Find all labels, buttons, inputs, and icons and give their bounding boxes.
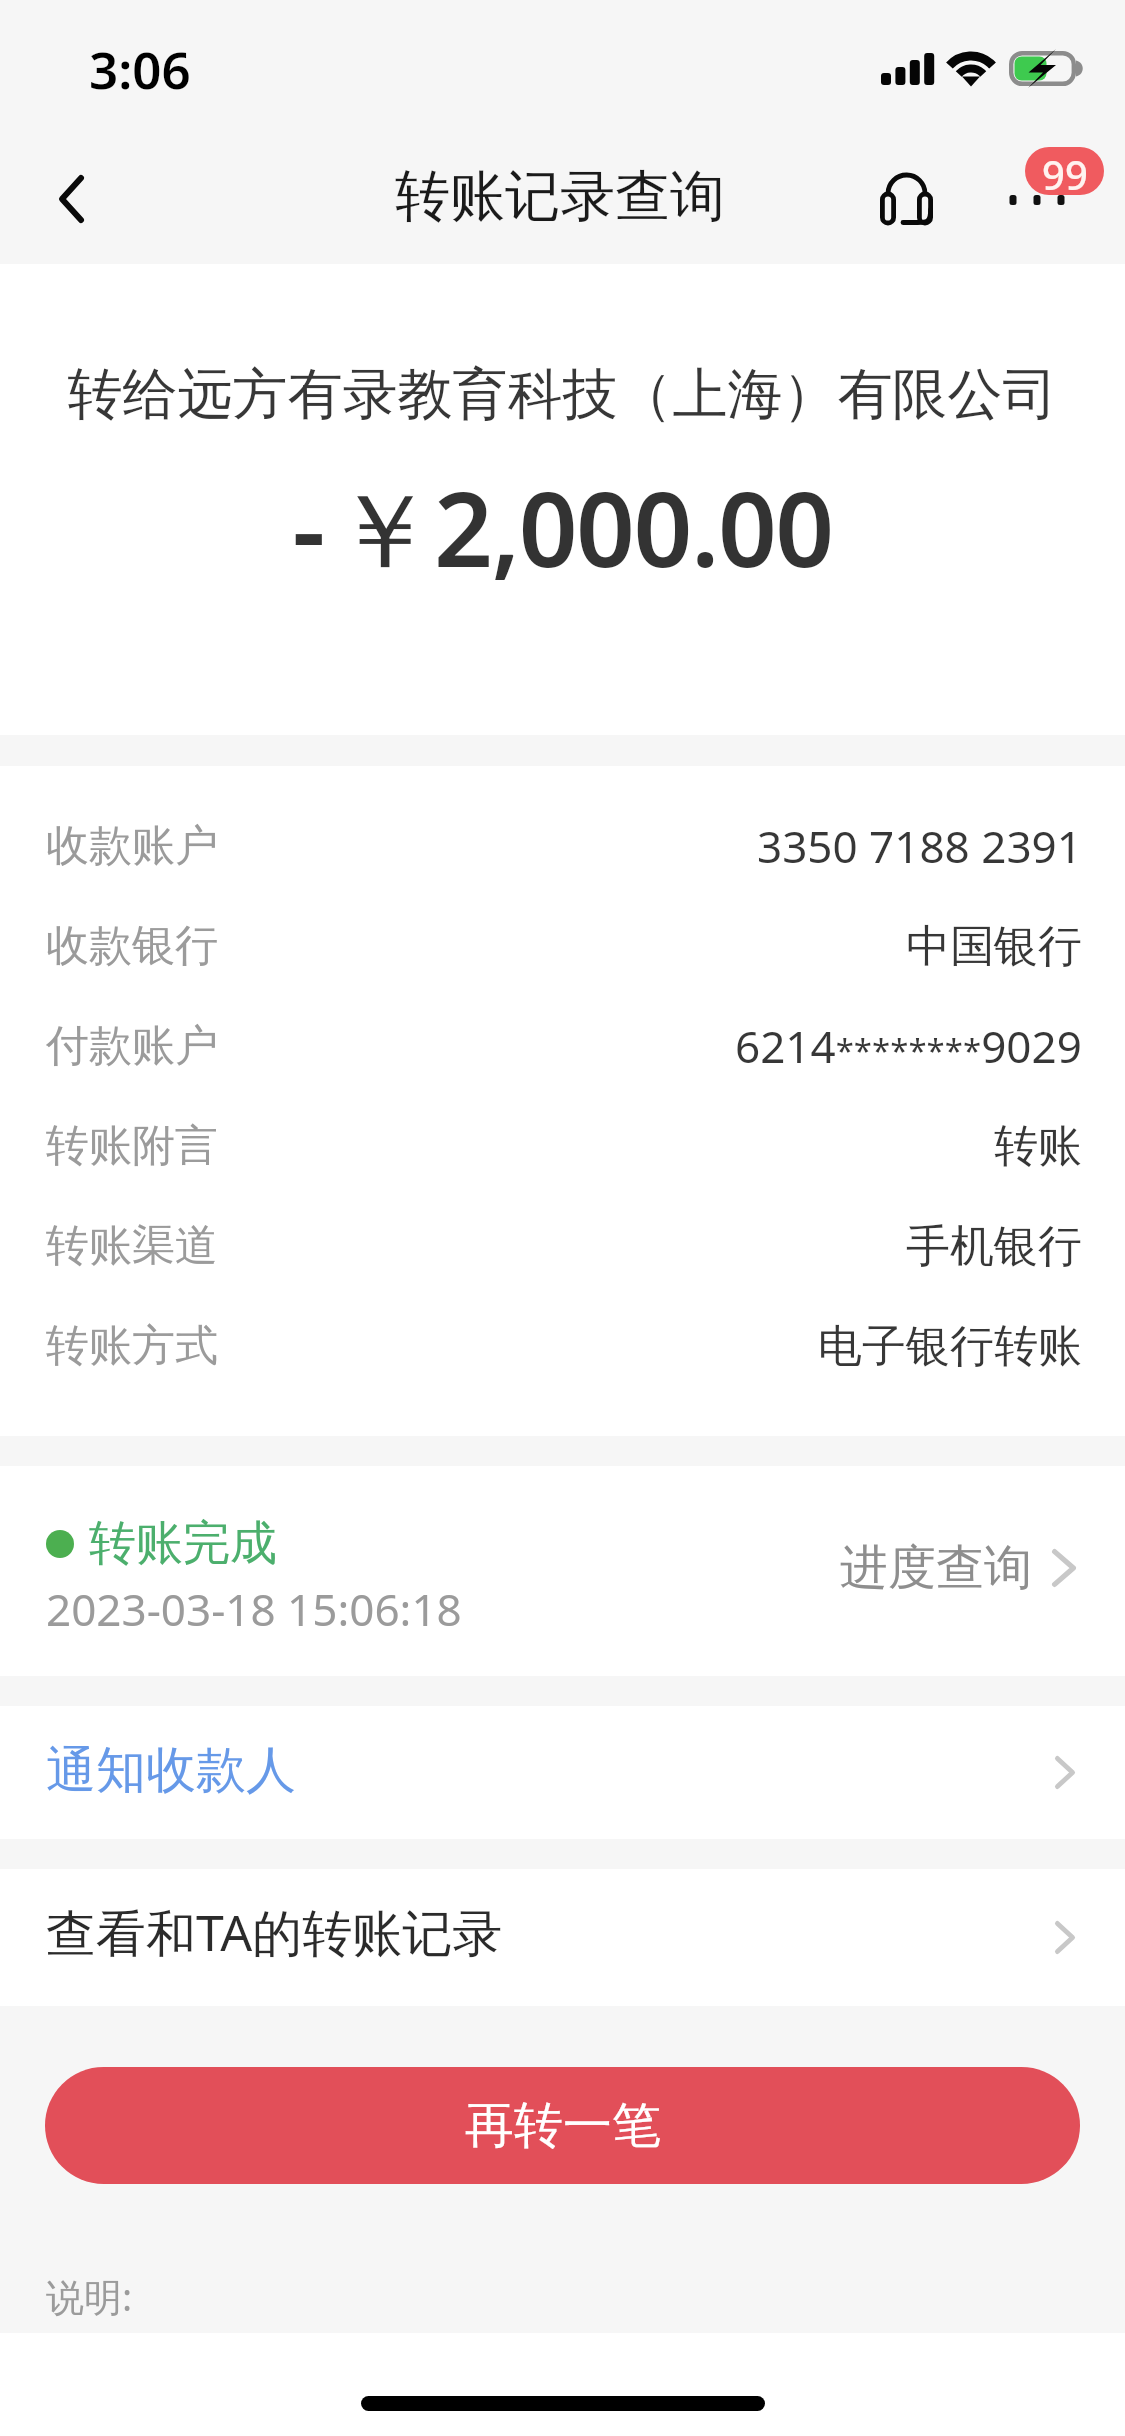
staticText: 转账记录查询: [395, 162, 725, 231]
staticText: 通知收款人: [46, 1739, 296, 1802]
staticText: 电子银行转账: [818, 1319, 1082, 1374]
staticText: 收款账户: [46, 819, 218, 873]
staticText: 3350 7188 2391: [757, 816, 1082, 876]
button[interactable]: 进度查询: [840, 1523, 1076, 1613]
staticText: - ￥2,000.00: [0, 457, 1125, 598]
staticText: 手机银行: [906, 1219, 1082, 1274]
staticText: 进度查询: [840, 1538, 1032, 1598]
button[interactable]: Back: [0, 140, 142, 264]
staticText: 收款银行: [46, 919, 218, 973]
staticText: 99: [1042, 147, 1088, 195]
staticText: 查看和TA的转账记录: [46, 1898, 503, 1966]
staticText: 转账: [994, 1119, 1082, 1174]
staticText: 2023-03-18 15:06:18: [46, 1579, 462, 1639]
button[interactable]: 通知收款人: [0, 1706, 1125, 1839]
staticText: 6214********9029: [735, 1016, 1082, 1076]
staticText: 中国银行: [906, 919, 1082, 974]
staticText: 转账渠道: [46, 1219, 218, 1273]
staticText: 转给远方有录教育科技（上海）有限公司: [0, 360, 1125, 429]
staticText: 转账完成: [89, 1514, 277, 1573]
button[interactable]: Customer service: [846, 136, 966, 260]
staticText: 转账附言: [46, 1119, 218, 1173]
staticText: 再转一笔: [465, 2095, 661, 2157]
button[interactable]: 再转一笔: [45, 2067, 1080, 2184]
button[interactable]: 查看和TA的转账记录: [0, 1869, 1125, 2006]
staticText: 说明:: [46, 2270, 133, 2322]
button[interactable]: More options: [977, 140, 1097, 264]
staticText: 3:06: [89, 34, 191, 103]
staticText: 付款账户: [46, 1019, 218, 1073]
staticText: 转账方式: [46, 1319, 218, 1373]
